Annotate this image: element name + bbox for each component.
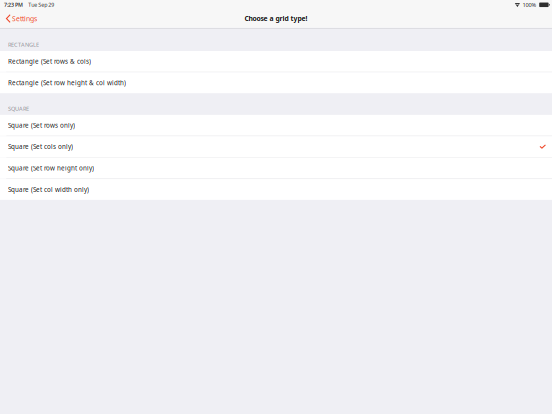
staticText: Tue Sep 29 (28, 1, 54, 8)
staticText: Rectangle (Set row height & col width) (8, 78, 126, 87)
staticText: Square (Set col width only) (8, 185, 89, 194)
staticText: Settings (12, 14, 37, 23)
staticText: Square (Set row height only) (8, 164, 94, 172)
button[interactable]: Rectangle (Set row height & col width) (0, 72, 552, 93)
button[interactable]: Square (Set cols only), selected (0, 136, 552, 157)
staticText: RECTANGLE (8, 41, 39, 48)
staticText: Choose a grid type! (244, 14, 307, 23)
staticText: Rectangle (Set rows & cols) (8, 57, 91, 66)
staticText: 7:23 PM (4, 1, 23, 8)
staticText: SQUARE (8, 105, 29, 112)
button[interactable]: Square (Set rows only) (0, 115, 552, 136)
button[interactable]: Back to Settings (0, 11, 43, 27)
button[interactable]: Square (Set col width only) (0, 179, 552, 200)
button[interactable]: Square (Set row height only) (0, 158, 552, 178)
staticText: Square (Set cols only) (8, 142, 73, 151)
button[interactable]: Rectangle (Set rows & cols) (0, 51, 552, 72)
staticText: Square (Set rows only) (8, 121, 75, 129)
staticText: 100% (523, 1, 537, 9)
